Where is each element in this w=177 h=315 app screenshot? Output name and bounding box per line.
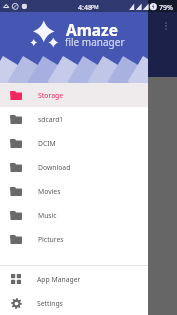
staticText: Download — [38, 163, 71, 172]
staticText: Movies — [38, 187, 61, 196]
staticText: DCIM — [38, 139, 56, 148]
staticText: Music — [38, 211, 57, 220]
button[interactable]: Storage — [0, 83, 148, 107]
staticText: Storage — [38, 91, 64, 100]
button[interactable]: More options — [159, 17, 172, 34]
button[interactable]: Settings — [0, 291, 148, 315]
staticText: Pictures — [38, 235, 64, 244]
button[interactable]: Movies — [0, 179, 148, 203]
staticText: sdcard1 — [38, 115, 64, 124]
staticText: 79% — [159, 3, 173, 13]
staticText: App Manager — [37, 275, 81, 284]
button[interactable]: sdcard1 — [0, 107, 148, 131]
staticText: 4:48 — [78, 3, 92, 13]
button[interactable]: DCIM — [0, 131, 148, 155]
button[interactable]: Music — [0, 203, 148, 227]
staticText: file manager — [65, 35, 125, 49]
staticText: Amaze — [66, 19, 119, 40]
button[interactable]: App Manager — [0, 267, 148, 291]
staticText: Settings — [37, 299, 63, 308]
button[interactable]: Download — [0, 155, 148, 179]
staticText: PM — [91, 4, 99, 11]
button[interactable]: Pictures — [0, 227, 148, 251]
